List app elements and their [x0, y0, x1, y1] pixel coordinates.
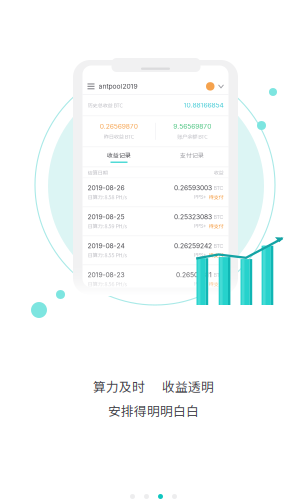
staticText: 历史总收益 BTC: [87, 101, 122, 109]
staticText: BTC: [213, 272, 223, 278]
staticText: 10.88166854: [183, 101, 223, 109]
staticText: 2019-08-23: [87, 271, 124, 279]
staticText: 待支付: [208, 280, 223, 288]
staticText: 结算日期: [87, 168, 107, 176]
staticText: 日算力: 8.55 PH/s: [87, 251, 126, 259]
staticText: PPS+: [194, 252, 207, 258]
staticText: PPS+: [194, 281, 207, 287]
button[interactable]: 支付记录: [155, 149, 228, 165]
staticText: 收益记录: [107, 151, 131, 160]
staticText: PPS+: [194, 223, 207, 229]
staticText: BTC: [213, 185, 223, 191]
staticText: 2019-08-25: [87, 213, 124, 221]
staticText: 算力及时: [93, 377, 145, 395]
staticText: antpool2019: [98, 82, 137, 90]
staticText: 待支付: [208, 251, 223, 259]
staticText: 9.56569870: [173, 122, 211, 130]
staticText: 2019-08-26: [87, 184, 124, 192]
staticText: 支付记录: [180, 151, 204, 160]
staticText: 日算力: 8.56 PH/s: [87, 280, 126, 288]
staticText: 待支付: [208, 222, 223, 230]
button[interactable]: 收益记录: [82, 149, 155, 165]
staticText: 收益: [213, 168, 223, 176]
staticText: 收益透明: [162, 377, 214, 395]
staticText: 日算力: 8.59 PH/s: [87, 222, 126, 230]
staticText: 0.26593003: [174, 184, 212, 192]
staticText: 0.25323083: [174, 213, 212, 221]
staticText: BTC: [213, 243, 223, 249]
staticText: PPS+: [194, 194, 207, 200]
staticText: 0.26259242: [174, 242, 212, 250]
staticText: 待支付: [208, 193, 223, 201]
staticText: 安排得明明白白: [108, 401, 199, 420]
staticText: 账户余额 BTC: [177, 132, 207, 140]
staticText: 0.26569870: [100, 122, 138, 130]
staticText: 昨日收益 BTC: [104, 132, 134, 140]
staticText: 2019-08-24: [87, 242, 124, 250]
staticText: 日算力: 8.58 PH/s: [87, 193, 126, 201]
staticText: 0.26503311: [176, 271, 212, 279]
staticText: BTC: [213, 214, 223, 220]
